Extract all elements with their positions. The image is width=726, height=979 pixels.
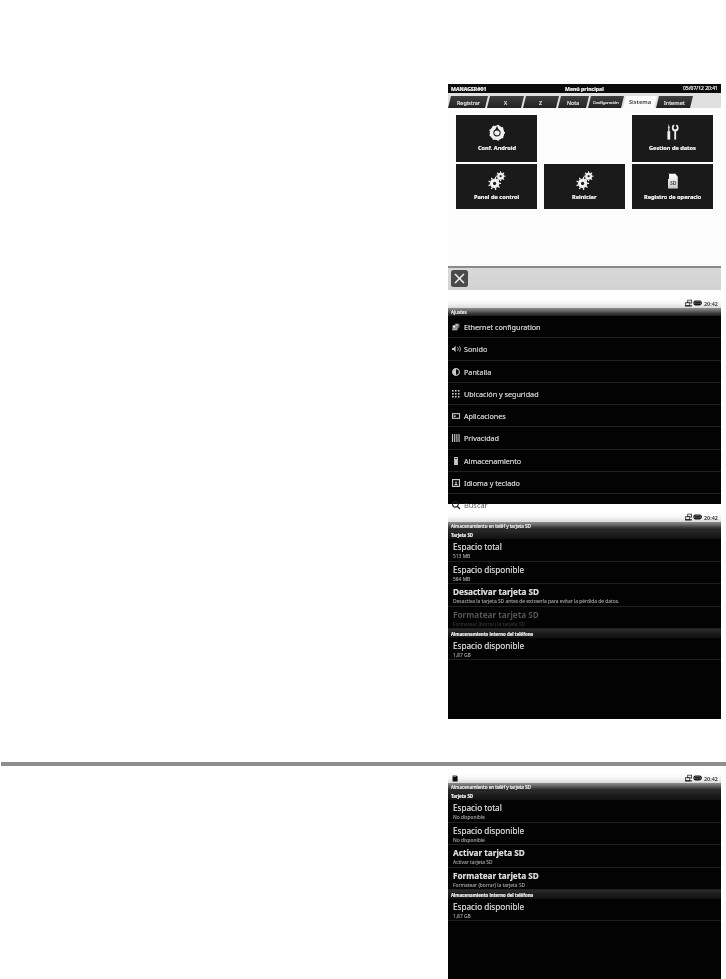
staticText: Desactivar tarjeta SD (453, 586, 540, 597)
staticText: Gestion de datos (649, 144, 696, 152)
staticText: Aplicaciones (464, 411, 506, 421)
staticText: Espacio total (453, 802, 502, 813)
staticText: Registro de operacio (644, 193, 702, 201)
staticText: Espacio disponible (453, 901, 525, 912)
staticText: 20:42 (704, 775, 718, 782)
button[interactable]: Privacidad (448, 427, 721, 450)
staticText: Idioma y teclado (464, 478, 520, 488)
staticText: Almacenamiento interno del teléfono (451, 631, 534, 637)
staticText: Configuración (593, 100, 619, 105)
staticText: Buscar (464, 500, 488, 510)
staticText: Almacenamiento (464, 456, 522, 466)
staticText: Activar tarjeta SD (453, 847, 525, 858)
button[interactable]: Almacenamiento (448, 450, 721, 472)
staticText: Formatear tarjeta SD (453, 870, 539, 881)
staticText: Espacio disponible (453, 825, 525, 836)
staticText: 20:42 (704, 300, 718, 307)
staticText: Desactiva la tarjeta SD antes de extraer… (453, 598, 620, 605)
staticText: Formatear (borrar) la tarjeta SD (453, 882, 526, 889)
button[interactable]: Formatear tarjeta SD (448, 868, 721, 890)
button[interactable]: Gestion de datos (632, 115, 713, 162)
button[interactable]: Conf. Android (456, 115, 537, 162)
staticText: Almacenamiento en teléf y tarjeta SD (451, 784, 531, 790)
button[interactable]: SD (632, 164, 713, 209)
button[interactable]: Sistema (623, 96, 657, 108)
staticText: 513 MB (453, 553, 471, 560)
staticText: Nota (567, 99, 580, 106)
staticText: Privacidad (464, 433, 500, 443)
staticText: Activar tarjeta SD (453, 859, 493, 866)
button[interactable]: Formatear tarjeta SD (448, 607, 721, 629)
button[interactable]: Reiniciar (544, 164, 625, 209)
staticText: SD (670, 179, 677, 186)
staticText: 1,87 GB (453, 913, 471, 920)
staticText: Internet (664, 99, 685, 106)
staticText: Reiniciar (572, 193, 597, 201)
button[interactable]: Configuración (588, 96, 624, 108)
staticText: Ajustes (451, 309, 467, 315)
button[interactable]: Pantalla (448, 361, 721, 383)
staticText: Z (539, 99, 543, 106)
staticText: Registrar (457, 99, 480, 106)
button[interactable]: Registrar (448, 96, 488, 108)
staticText: Espacio disponible (453, 640, 525, 651)
staticText: Sistema (629, 98, 652, 106)
staticText: Espacio disponible (453, 564, 525, 575)
staticText: X (504, 99, 508, 106)
button[interactable]: Espacio total (448, 539, 721, 562)
button[interactable]: Nota (558, 96, 589, 108)
staticText: Ubicación y seguridad (464, 389, 539, 399)
staticText: Formatear (borrar) la tarjeta SD (453, 621, 526, 628)
staticText: 584 MB (453, 576, 471, 583)
staticText: Conf. Android (478, 144, 516, 152)
button[interactable]: Espacio disponible (448, 562, 721, 584)
button[interactable]: Z (523, 96, 559, 108)
button[interactable]: Ubicación y seguridad (448, 383, 721, 405)
staticText: Ethernet configuration (464, 322, 541, 332)
staticText: No disponible (453, 837, 485, 844)
staticText: Tarjeta SD (451, 532, 474, 538)
staticText: Almacenamiento interno del teléfono (451, 892, 534, 898)
button[interactable]: Internet (656, 96, 693, 108)
button[interactable]: Activar tarjeta SD (448, 845, 721, 868)
button[interactable]: Desactivar tarjeta SD (448, 584, 721, 607)
staticText: Tarjeta SD (451, 793, 474, 799)
button[interactable]: X (487, 96, 524, 108)
staticText: Espacio total (453, 541, 502, 552)
button[interactable]: Aplicaciones (448, 405, 721, 427)
staticText: Almacenamiento en teléf y tarjeta SD (451, 523, 531, 529)
staticText: MANAGER#01 (451, 85, 487, 92)
staticText: No disponible (453, 814, 485, 821)
button[interactable]: Espacio disponible (448, 638, 721, 660)
button[interactable]: Panel de control (456, 164, 537, 209)
staticText: 20:42 (704, 514, 718, 521)
staticText: Panel de control (474, 193, 520, 201)
staticText: 05/07/12 20:41 (683, 85, 718, 92)
button[interactable]: Ethernet configuration (448, 316, 721, 338)
staticText: Sonido (464, 344, 488, 354)
button[interactable]: Espacio disponible (448, 899, 721, 921)
staticText: Pantalla (464, 367, 492, 377)
staticText: Formatear tarjeta SD (453, 609, 539, 620)
staticText: 1,87 GB (453, 652, 471, 659)
button[interactable]: Cerrar (451, 270, 468, 287)
staticText: Menú principal (565, 85, 604, 92)
button[interactable]: Idioma y teclado (448, 472, 721, 494)
button[interactable]: Espacio total (448, 800, 721, 823)
button[interactable]: Sonido (448, 338, 721, 361)
button[interactable]: Espacio disponible (448, 823, 721, 845)
